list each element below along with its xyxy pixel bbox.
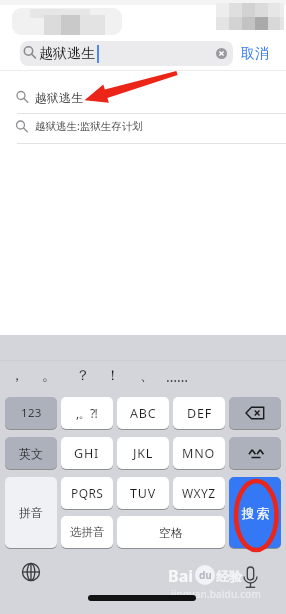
staticText: DEF <box>187 405 212 422</box>
staticText: 取消 <box>241 45 269 63</box>
button[interactable]: 拼音 <box>5 477 57 548</box>
button[interactable] <box>216 48 227 59</box>
staticText: WXYZ <box>182 485 216 501</box>
button[interactable] <box>229 397 281 429</box>
button[interactable]: 取消 <box>238 41 272 66</box>
staticText: 英文 <box>19 446 43 461</box>
button[interactable]: GHI <box>61 437 113 469</box>
button[interactable] <box>20 41 233 66</box>
staticText: ？ <box>76 367 90 385</box>
staticText: Bai <box>168 565 194 587</box>
staticText: GHI <box>74 445 100 462</box>
button[interactable]: ABC <box>117 397 169 429</box>
button[interactable]: TUV <box>117 477 169 509</box>
staticText: 、 <box>140 367 154 385</box>
button[interactable]: 123 <box>5 397 57 429</box>
staticText: 越狱逃生:监狱生存计划 <box>35 119 143 133</box>
staticText: 拼音 <box>19 505 43 520</box>
button[interactable]: 选拼音 <box>61 516 113 548</box>
staticText: 越狱逃生 <box>35 90 83 105</box>
staticText: 越狱逃生 <box>39 45 95 63</box>
staticText: TUV <box>130 485 156 502</box>
staticText: 经验 <box>216 568 242 584</box>
button[interactable]: JKL <box>117 437 169 469</box>
staticText: 选拼音 <box>70 525 105 539</box>
staticText: PQRS <box>71 485 104 501</box>
staticText: du <box>199 568 212 582</box>
staticText: 123 <box>21 405 42 421</box>
button[interactable]: 英文 <box>5 437 57 469</box>
staticText: MNO <box>182 445 216 462</box>
button[interactable]: 空格 <box>117 516 225 548</box>
staticText: ABC <box>130 405 157 422</box>
staticText: JKL <box>133 445 154 462</box>
staticText: …… <box>166 367 189 386</box>
button[interactable]: DEF <box>173 397 225 429</box>
button[interactable]: PQRS <box>61 477 113 509</box>
staticText: 搜索 <box>241 505 270 521</box>
staticText: 空格 <box>159 525 183 540</box>
staticText: ,。?! <box>76 405 98 421</box>
button[interactable] <box>229 437 281 469</box>
staticText: 。 <box>42 367 56 385</box>
button[interactable] <box>10 556 54 588</box>
button[interactable] <box>0 114 286 143</box>
staticText: ， <box>10 367 24 385</box>
button[interactable]: 搜索 <box>229 477 281 548</box>
staticText: ！ <box>106 367 120 385</box>
button[interactable] <box>0 84 286 113</box>
button[interactable]: ,。?! <box>61 397 113 429</box>
button[interactable]: WXYZ <box>173 477 225 509</box>
button[interactable]: MNO <box>173 437 225 469</box>
staticText: jingyan.baidu.com <box>171 587 262 601</box>
